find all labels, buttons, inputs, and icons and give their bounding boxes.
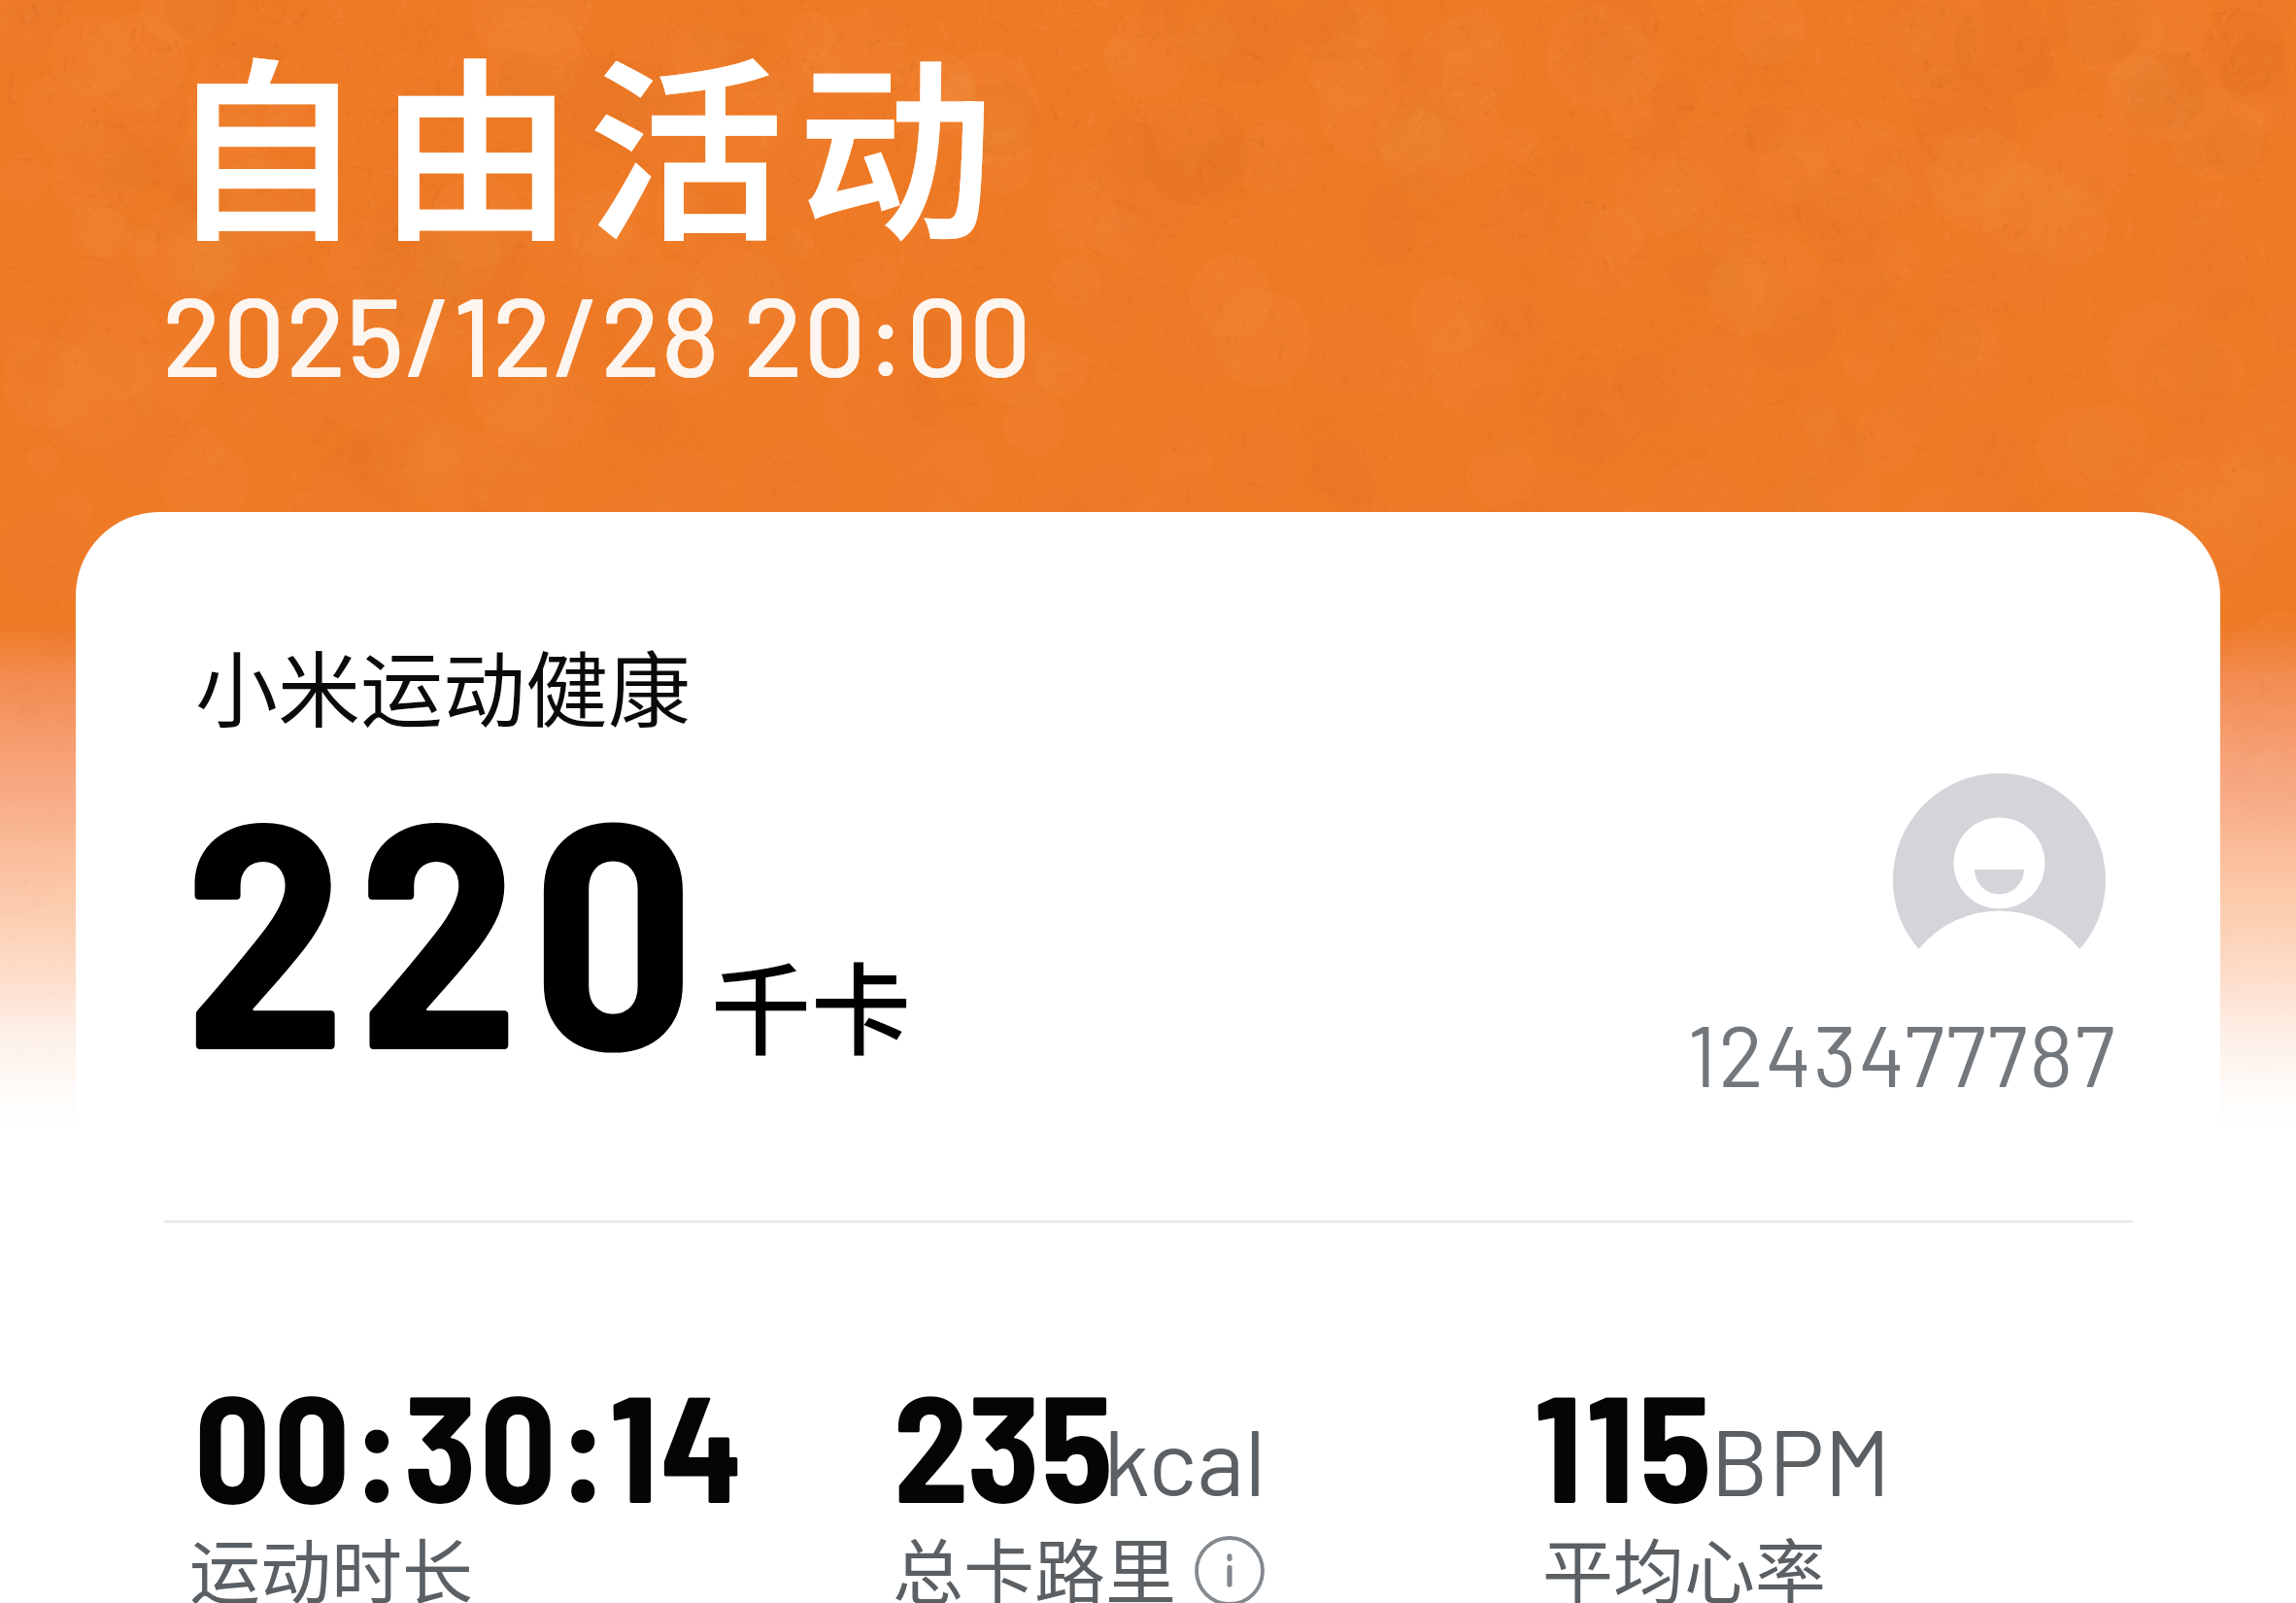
staticText: 自由活动 — [168, 0, 1007, 281]
staticText: 220 — [185, 730, 709, 1113]
other: Profile avatar — [1893, 773, 2106, 986]
staticText: 运动时长 — [189, 1516, 473, 1603]
staticText: 总卡路里 — [893, 1516, 1176, 1603]
staticText: 2025/12/28 20:00 — [162, 267, 1032, 399]
staticText: 115 — [1535, 1353, 1716, 1533]
staticText: 小米运动健康 — [195, 625, 692, 744]
staticText: BPM — [1710, 1403, 1891, 1515]
staticText: 千卡 — [711, 932, 911, 1076]
button[interactable]: 115 — [1519, 1353, 2160, 1603]
button[interactable]: Calories info — [1195, 1536, 1265, 1603]
staticText: kcal — [1103, 1403, 1266, 1515]
button[interactable]: 小米运动健康 — [76, 512, 2220, 1603]
staticText: 235 — [894, 1353, 1113, 1533]
button[interactable]: 235 — [878, 1353, 1519, 1603]
staticText: 00:30:14 — [194, 1353, 746, 1533]
staticText: 平均心率 — [1542, 1516, 1826, 1603]
staticText: 1243477787 — [1687, 1003, 2117, 1104]
button[interactable]: 00:30:14 — [179, 1353, 859, 1603]
